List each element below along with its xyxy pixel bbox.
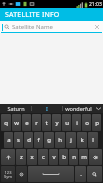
staticText: r — [35, 119, 38, 127]
button[interactable]: q — [1, 114, 11, 131]
button[interactable]: More suggestions — [93, 104, 103, 113]
staticText: I — [46, 105, 48, 112]
button[interactable]: g — [44, 132, 54, 148]
button[interactable]: c — [38, 149, 48, 165]
button[interactable]: f — [34, 132, 43, 148]
button[interactable]: z — [16, 149, 26, 165]
button[interactable]: p — [92, 114, 101, 131]
staticText: e — [25, 119, 29, 127]
staticText: t — [45, 119, 48, 127]
staticText: b — [62, 153, 66, 161]
staticText: Saturn — [7, 105, 25, 112]
button[interactable]: t — [42, 114, 51, 131]
staticText: w — [14, 119, 19, 127]
staticText: SATELLITE INFO — [5, 10, 60, 20]
button[interactable]: m — [79, 149, 88, 165]
button[interactable]: I — [32, 104, 62, 113]
staticText: q — [4, 119, 8, 127]
staticText: h — [58, 136, 62, 144]
button[interactable]: w — [12, 114, 21, 131]
staticText: a — [7, 136, 11, 144]
button[interactable]: Search — [87, 166, 102, 182]
staticText: i — [76, 119, 78, 127]
staticText: k — [80, 136, 84, 144]
staticText: v — [52, 153, 56, 161]
staticText: g — [47, 136, 51, 144]
button[interactable]: h — [55, 132, 65, 148]
button[interactable]: l — [88, 132, 98, 148]
button[interactable]: v — [49, 149, 58, 165]
button[interactable]: a — [4, 132, 13, 148]
button[interactable]: b — [59, 149, 68, 165]
button[interactable]: Backspace — [89, 149, 102, 165]
staticText: u — [65, 119, 69, 127]
staticText: 123 Sym — [4, 170, 12, 179]
staticText: x — [30, 153, 34, 161]
button[interactable]: x — [27, 149, 37, 165]
button[interactable]: o — [82, 114, 91, 131]
staticText: o — [85, 119, 89, 127]
button[interactable]: e — [22, 114, 31, 131]
staticText: y — [55, 119, 59, 127]
button[interactable]: y — [52, 114, 61, 131]
staticText: n — [72, 153, 76, 161]
button[interactable]: wonderful — [63, 104, 93, 113]
staticText: m — [81, 153, 87, 161]
button[interactable]: Shift — [1, 149, 15, 165]
staticText: l — [92, 136, 94, 144]
button[interactable]: Saturn — [0, 104, 31, 113]
staticText: d — [27, 136, 31, 144]
button[interactable]: Input settings — [16, 166, 27, 182]
button[interactable]: n — [69, 149, 78, 165]
staticText: j — [70, 136, 72, 144]
staticText: s — [17, 136, 20, 144]
button[interactable]: . — [75, 166, 86, 182]
button[interactable]: d — [24, 132, 33, 148]
staticText: 21:03 — [89, 1, 102, 8]
staticText: f — [37, 136, 40, 144]
button[interactable]: u — [62, 114, 71, 131]
staticText: wonderful — [65, 105, 92, 112]
button[interactable]: Satellite Name — [0, 21, 103, 33]
button[interactable]: Space — [28, 166, 74, 182]
staticText: z — [20, 153, 23, 161]
button[interactable]: s — [14, 132, 23, 148]
button[interactable]: k — [77, 132, 87, 148]
button[interactable]: i — [72, 114, 81, 131]
button[interactable]: SATELLITE INFO — [0, 8, 103, 21]
button[interactable]: 123 Sym — [1, 166, 15, 182]
staticText: c — [42, 153, 45, 161]
staticText: . — [80, 170, 82, 178]
button[interactable]: j — [66, 132, 76, 148]
button[interactable]: r — [32, 114, 41, 131]
button[interactable]: Clear search — [94, 24, 100, 30]
staticText: p — [95, 119, 99, 127]
staticText: Satellite Name — [12, 23, 53, 31]
